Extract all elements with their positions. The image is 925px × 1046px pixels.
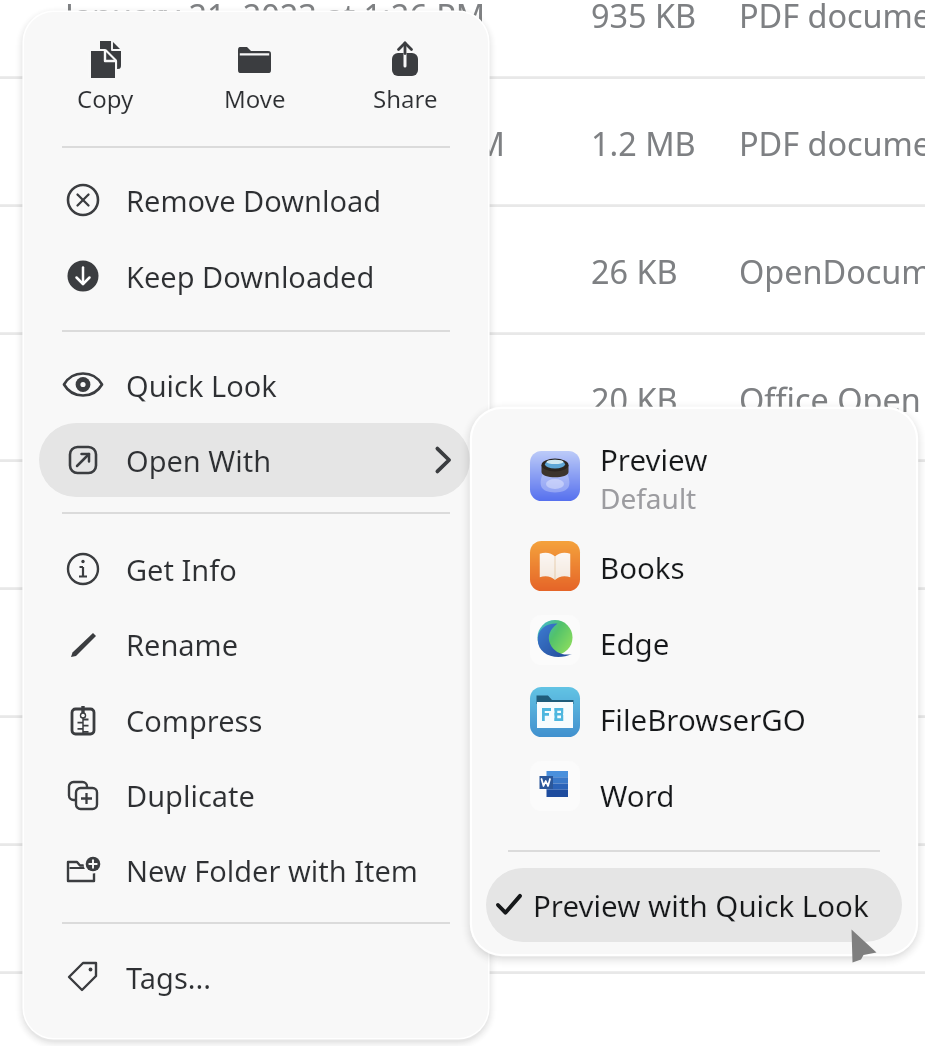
staticText: 935 KB: [591, 0, 697, 37]
staticText: Rename: [126, 625, 239, 664]
staticText: Keep Downloaded: [126, 257, 375, 296]
staticText: Word: [600, 775, 675, 815]
button[interactable]: New Folder with Item: [39, 833, 470, 907]
staticText: Tags...: [126, 958, 212, 997]
button[interactable]: Preview: [480, 440, 908, 512]
button[interactable]: Open With: [39, 423, 470, 497]
button[interactable]: Duplicate: [39, 758, 470, 832]
staticText: Open With: [126, 441, 272, 480]
staticText: January 17, 2023 at 9:31 PM: [65, 377, 486, 421]
button[interactable]: [43, 26, 167, 90]
staticText: 20 KB: [591, 377, 678, 421]
staticText: Share: [373, 82, 438, 115]
button[interactable]: [343, 26, 467, 90]
button[interactable]: Share: [343, 82, 467, 115]
staticText: 1.2 MB: [591, 121, 696, 165]
staticText: Books: [600, 547, 685, 587]
staticText: Quick Look: [126, 366, 277, 405]
staticText: Remove Download: [126, 181, 382, 220]
staticText: PDF document: [739, 121, 925, 165]
staticText: January 19, 2023 at 2:49: [65, 249, 428, 293]
button[interactable]: Tags...: [39, 940, 470, 1014]
button[interactable]: Books: [480, 530, 908, 602]
staticText: OpenDocument: [739, 249, 925, 293]
staticText: Office Open XML: [739, 377, 925, 421]
button[interactable]: Move: [193, 82, 317, 115]
staticText: New Folder with Item: [126, 851, 418, 890]
staticText: Copy: [77, 82, 134, 115]
staticText: Move: [224, 82, 286, 115]
button[interactable]: Quick Look: [39, 348, 470, 422]
staticText: Preview: [600, 439, 708, 479]
staticText: 26 KB: [591, 249, 678, 293]
staticText: January 20, 2023 at 11:05 AM: [65, 121, 505, 165]
staticText: PDF document: [739, 0, 925, 37]
button[interactable]: Compress: [39, 683, 470, 757]
button[interactable]: Edge: [480, 604, 908, 676]
button[interactable]: Word: [480, 750, 908, 822]
button[interactable]: Rename: [39, 607, 470, 681]
staticText: Default: [600, 479, 697, 517]
staticText: Compress: [126, 701, 263, 740]
button[interactable]: Preview with Quick Look: [486, 868, 902, 942]
staticText: Get Info: [126, 550, 237, 589]
staticText: January 21, 2023 at 1:26 PM: [65, 0, 486, 37]
button[interactable]: [193, 26, 317, 90]
button[interactable]: Copy: [43, 82, 167, 115]
button[interactable]: FileBrowserGO: [480, 676, 908, 748]
staticText: Preview with Quick Look: [533, 885, 869, 925]
staticText: Edge: [600, 623, 670, 663]
button[interactable]: Keep Downloaded: [39, 239, 470, 313]
button[interactable]: Get Info: [39, 532, 470, 606]
staticText: Duplicate: [126, 776, 255, 815]
button[interactable]: Remove Download: [39, 163, 470, 237]
staticText: FileBrowserGO: [600, 699, 806, 739]
